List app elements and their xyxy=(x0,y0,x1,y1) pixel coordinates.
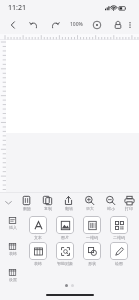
button[interactable]: Collapse xyxy=(1,195,16,209)
button[interactable]: Barcode xyxy=(79,216,104,240)
staticText: 表格 xyxy=(9,251,17,256)
staticText: 智能对象 xyxy=(57,261,73,266)
staticText: 一维码 xyxy=(86,235,98,240)
button[interactable]: Draw xyxy=(106,242,131,266)
button[interactable]: Settings xyxy=(2,268,23,282)
staticText: 打印 xyxy=(125,206,133,211)
button[interactable]: Delete xyxy=(16,195,37,211)
button[interactable]: Table xyxy=(25,242,50,266)
staticText: 复制 xyxy=(44,206,52,211)
staticText: 绘图 xyxy=(115,261,123,266)
button[interactable]: Print xyxy=(121,195,137,211)
button[interactable]: Play xyxy=(89,16,105,34)
button[interactable]: Insert xyxy=(2,216,23,230)
button[interactable]: Image xyxy=(52,216,77,240)
staticText: 翻转 xyxy=(65,206,73,211)
staticText: 11:21 xyxy=(8,3,26,13)
button[interactable]: 100% xyxy=(66,15,87,34)
button[interactable]: Shape xyxy=(79,242,104,266)
staticText: 形状 xyxy=(88,261,96,266)
staticText: 缩小 xyxy=(107,206,115,211)
button[interactable]: Zoom out xyxy=(100,195,121,211)
staticText: 图片 xyxy=(61,235,69,240)
button[interactable]: Zoom in xyxy=(79,195,100,211)
button[interactable]: QR code xyxy=(106,216,131,240)
staticText: 删除 xyxy=(23,206,31,211)
staticText: 插入 xyxy=(9,225,17,230)
button[interactable]: Smart object xyxy=(52,242,77,266)
staticText: 设置 xyxy=(9,277,17,282)
staticText: 文本 xyxy=(34,235,42,240)
staticText: 放大 xyxy=(86,206,94,211)
button[interactable]: Copy xyxy=(37,195,58,211)
staticText: 100% xyxy=(70,21,83,28)
button[interactable]: Table menu xyxy=(2,242,23,256)
button[interactable]: More options xyxy=(126,16,134,34)
staticText: 表格 xyxy=(34,261,42,266)
button[interactable]: Undo xyxy=(26,16,42,34)
button[interactable]: Redo xyxy=(47,16,63,34)
button[interactable]: Text xyxy=(25,216,50,240)
button[interactable]: Lock xyxy=(110,16,126,34)
button[interactable]: Share xyxy=(58,195,79,211)
button[interactable]: Back xyxy=(5,16,21,34)
staticText: 二维码 xyxy=(113,235,125,240)
